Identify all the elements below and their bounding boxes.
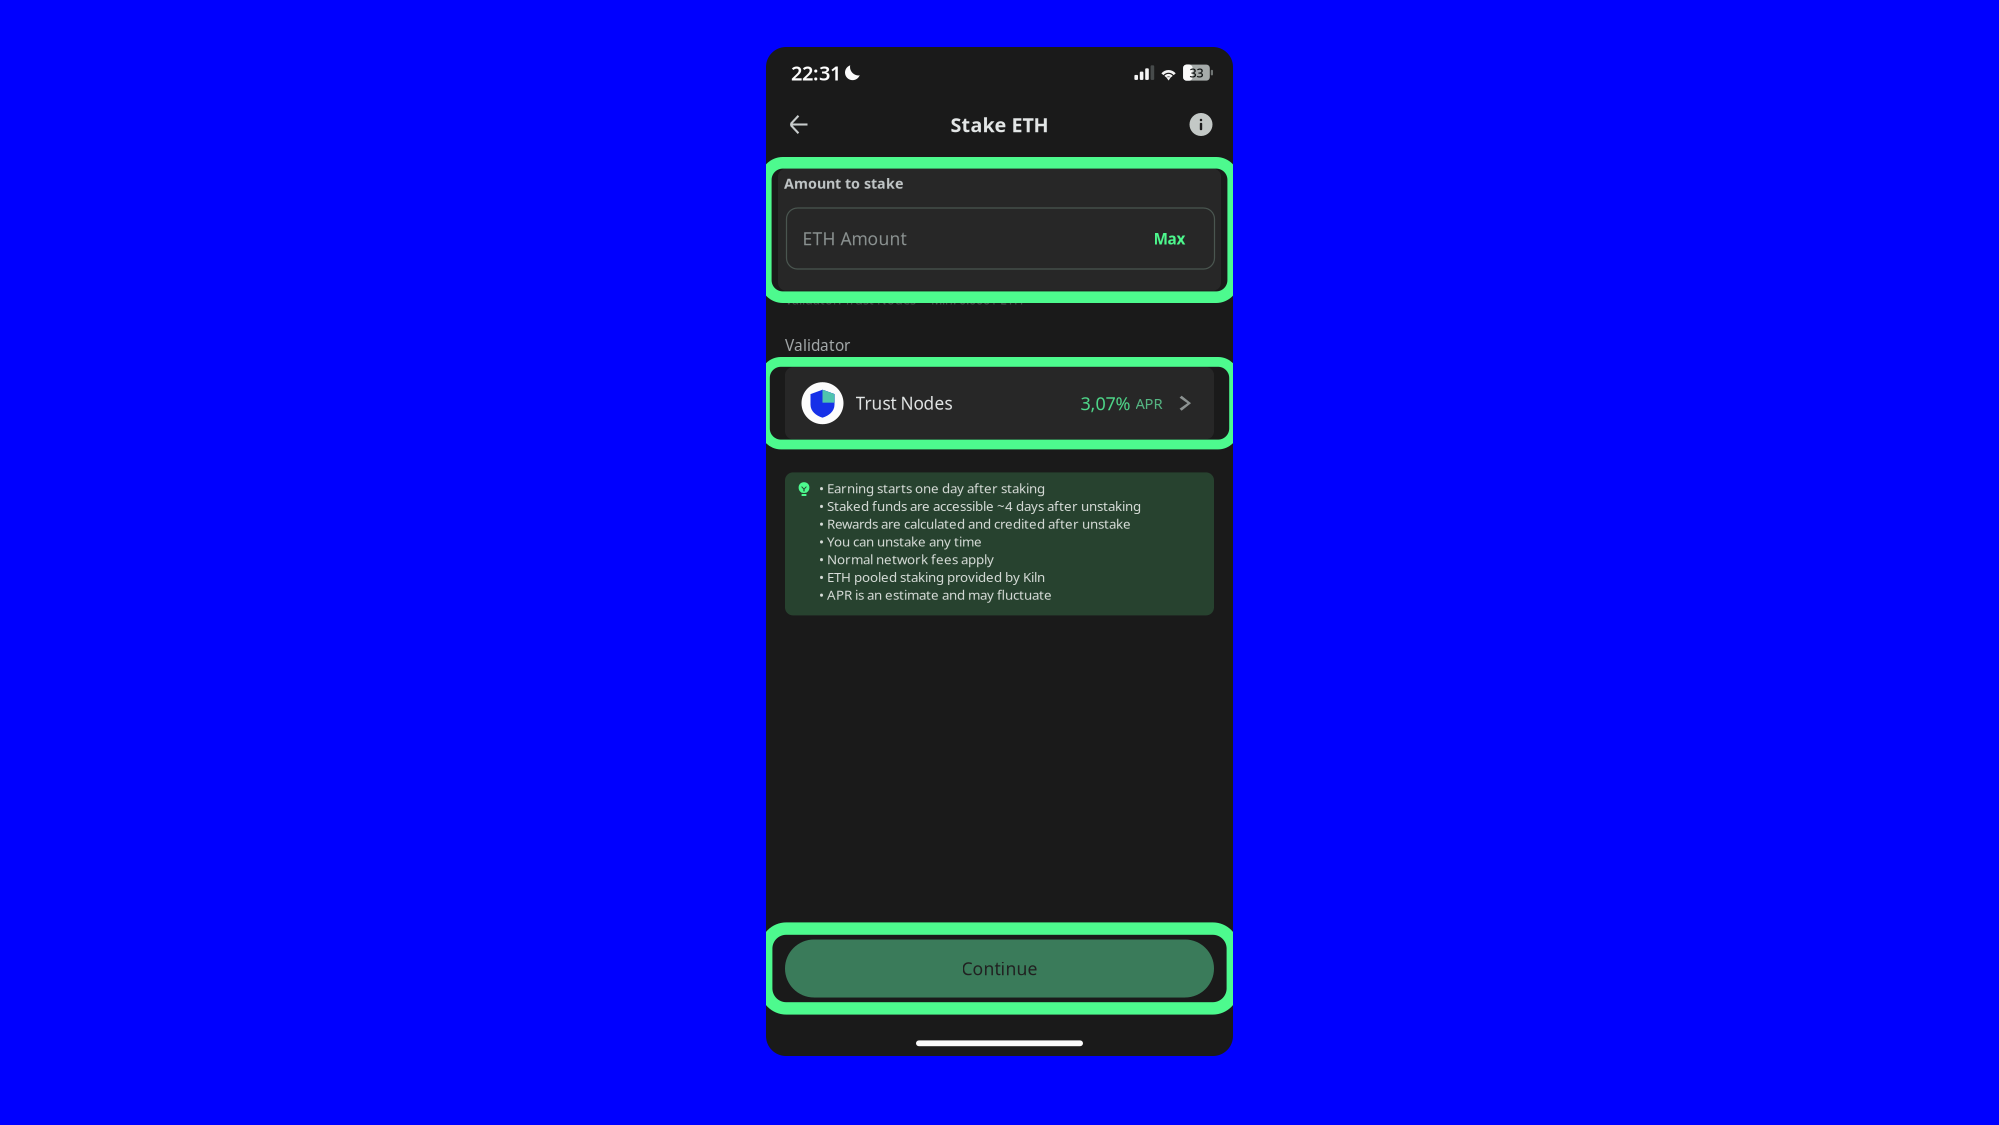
staticText: Validator bbox=[785, 335, 850, 355]
staticText: 33 bbox=[1189, 64, 1203, 81]
staticText: • Rewards are calculated and credited af… bbox=[819, 514, 1131, 533]
staticText: Stake ETH bbox=[950, 111, 1048, 138]
staticText: ETH Amount bbox=[802, 227, 906, 250]
staticText: • ETH pooled staking provided by Kiln bbox=[819, 568, 1045, 586]
staticText: • Earning starts one day after staking bbox=[819, 479, 1045, 497]
staticText: Validator: Trust Nodes · Min: 0.0001 ETH bbox=[785, 291, 1023, 308]
staticText: • Normal network fees apply bbox=[819, 550, 994, 568]
staticText: • Staked funds are accessible ~4 days af… bbox=[819, 497, 1141, 515]
staticText: 3,07% bbox=[1081, 391, 1131, 415]
staticText: Max bbox=[1153, 228, 1185, 249]
staticText: APR bbox=[1136, 393, 1163, 413]
staticText: • You can unstake any time bbox=[819, 532, 982, 550]
button[interactable]: Information bbox=[1175, 103, 1233, 146]
staticText: 22:31 bbox=[791, 59, 841, 86]
staticText: Continue bbox=[961, 956, 1037, 980]
staticText: • APR is an estimate and may fluctuate bbox=[819, 585, 1052, 604]
button[interactable]: Max bbox=[1141, 216, 1214, 261]
button[interactable]: Trust Nodes bbox=[785, 367, 1214, 439]
button[interactable]: Continue bbox=[785, 939, 1214, 997]
staticText: Amount to stake bbox=[784, 174, 904, 193]
staticText: Trust Nodes bbox=[855, 391, 952, 415]
button[interactable]: Back bbox=[766, 103, 821, 146]
